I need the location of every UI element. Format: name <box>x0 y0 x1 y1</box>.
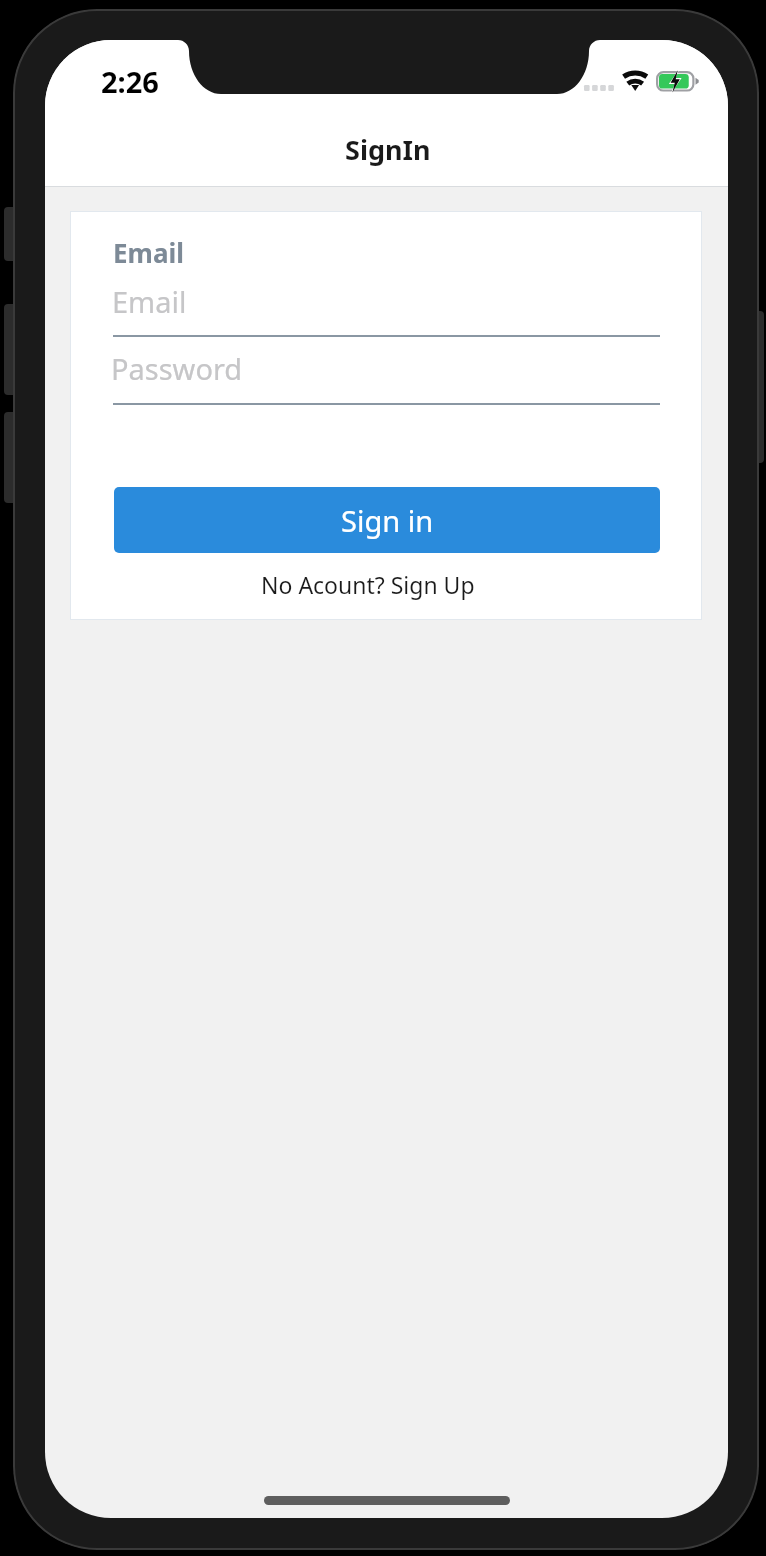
other: Wi-Fi <box>622 70 649 91</box>
other: Battery charging <box>656 71 700 93</box>
staticText: Password <box>111 349 243 388</box>
staticText: Email <box>112 282 187 321</box>
staticText: SignIn <box>345 131 431 168</box>
staticText: No Acount? Sign Up <box>261 569 475 600</box>
staticText: Sign in <box>341 501 434 540</box>
button[interactable]: Sign in <box>114 487 660 553</box>
staticText: 2:26 <box>101 62 159 101</box>
button[interactable]: No Acount? Sign Up <box>261 569 475 600</box>
staticText: Email <box>113 235 185 270</box>
